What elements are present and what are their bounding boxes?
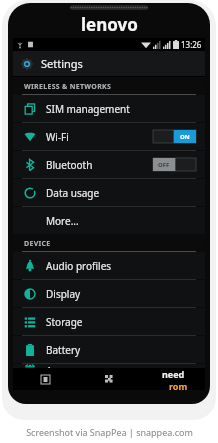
button[interactable]: Back xyxy=(13,368,77,390)
button[interactable]: Settings xyxy=(13,51,205,76)
button[interactable]: More... xyxy=(13,207,205,234)
button[interactable]: Apps xyxy=(13,364,205,368)
staticText: SIM management xyxy=(46,102,130,116)
staticText: DEVICE xyxy=(24,239,51,249)
button[interactable]: Storage xyxy=(13,308,205,335)
staticText: OFF xyxy=(158,161,170,169)
staticText: Bluetooth xyxy=(46,158,93,172)
staticText: Wi-Fi xyxy=(46,130,69,144)
staticText: Apps xyxy=(46,364,70,368)
staticText: need xyxy=(162,368,185,380)
button[interactable]: Bluetooth xyxy=(13,151,205,178)
button[interactable]: Toggle off xyxy=(153,158,196,171)
staticText: lenovo xyxy=(81,13,138,36)
button[interactable]: Battery xyxy=(13,336,205,363)
button[interactable]: SIM management xyxy=(13,95,205,122)
button[interactable]: Audio profiles xyxy=(13,252,205,279)
button[interactable]: Display xyxy=(13,280,205,307)
staticText: More... xyxy=(46,214,79,228)
staticText: ON xyxy=(180,133,190,141)
button[interactable]: Toggle on xyxy=(153,130,196,143)
button[interactable]: Wi-Fi xyxy=(13,123,205,150)
staticText: Battery xyxy=(46,343,81,357)
staticText: Settings xyxy=(41,56,83,71)
staticText: Display xyxy=(46,287,81,301)
button[interactable]: Home xyxy=(77,368,141,390)
staticText: Data usage xyxy=(46,186,100,200)
button[interactable]: Data usage xyxy=(13,179,205,206)
staticText: rom xyxy=(169,380,188,390)
staticText: Storage xyxy=(46,315,83,329)
staticText: Audio profiles xyxy=(46,259,112,273)
staticText: Screenshot via SnapPea | snappea.com xyxy=(26,426,193,438)
staticText: WIRELESS & NETWORKS xyxy=(24,82,112,92)
staticText: 13:26 xyxy=(181,39,202,50)
